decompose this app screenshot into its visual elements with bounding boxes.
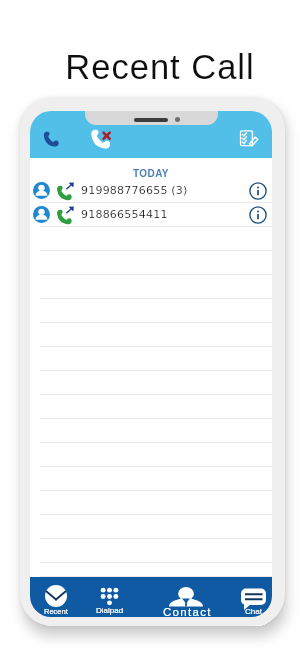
button[interactable]: 919988776655 (3) (30, 179, 272, 203)
staticText: 919988776655 (3) (81, 184, 188, 197)
button[interactable]: Chat (235, 577, 272, 617)
button[interactable]: Recent (30, 577, 82, 617)
staticText: Chat (245, 607, 262, 616)
staticText: TODAY (133, 168, 169, 179)
button[interactable]: 918866554411 (30, 203, 272, 227)
staticText: Dialpad (96, 606, 124, 615)
staticText: Recent (44, 607, 68, 615)
button[interactable]: Edit list (238, 127, 260, 149)
button[interactable]: Missed calls (85, 124, 113, 152)
staticText: Recent Call (10, 48, 300, 87)
button[interactable]: Calls (38, 125, 64, 151)
staticText: 918866554411 (81, 208, 168, 221)
staticText: Contact (163, 606, 212, 617)
button[interactable]: Contact (137, 577, 235, 617)
button[interactable]: Dialpad (82, 577, 137, 617)
